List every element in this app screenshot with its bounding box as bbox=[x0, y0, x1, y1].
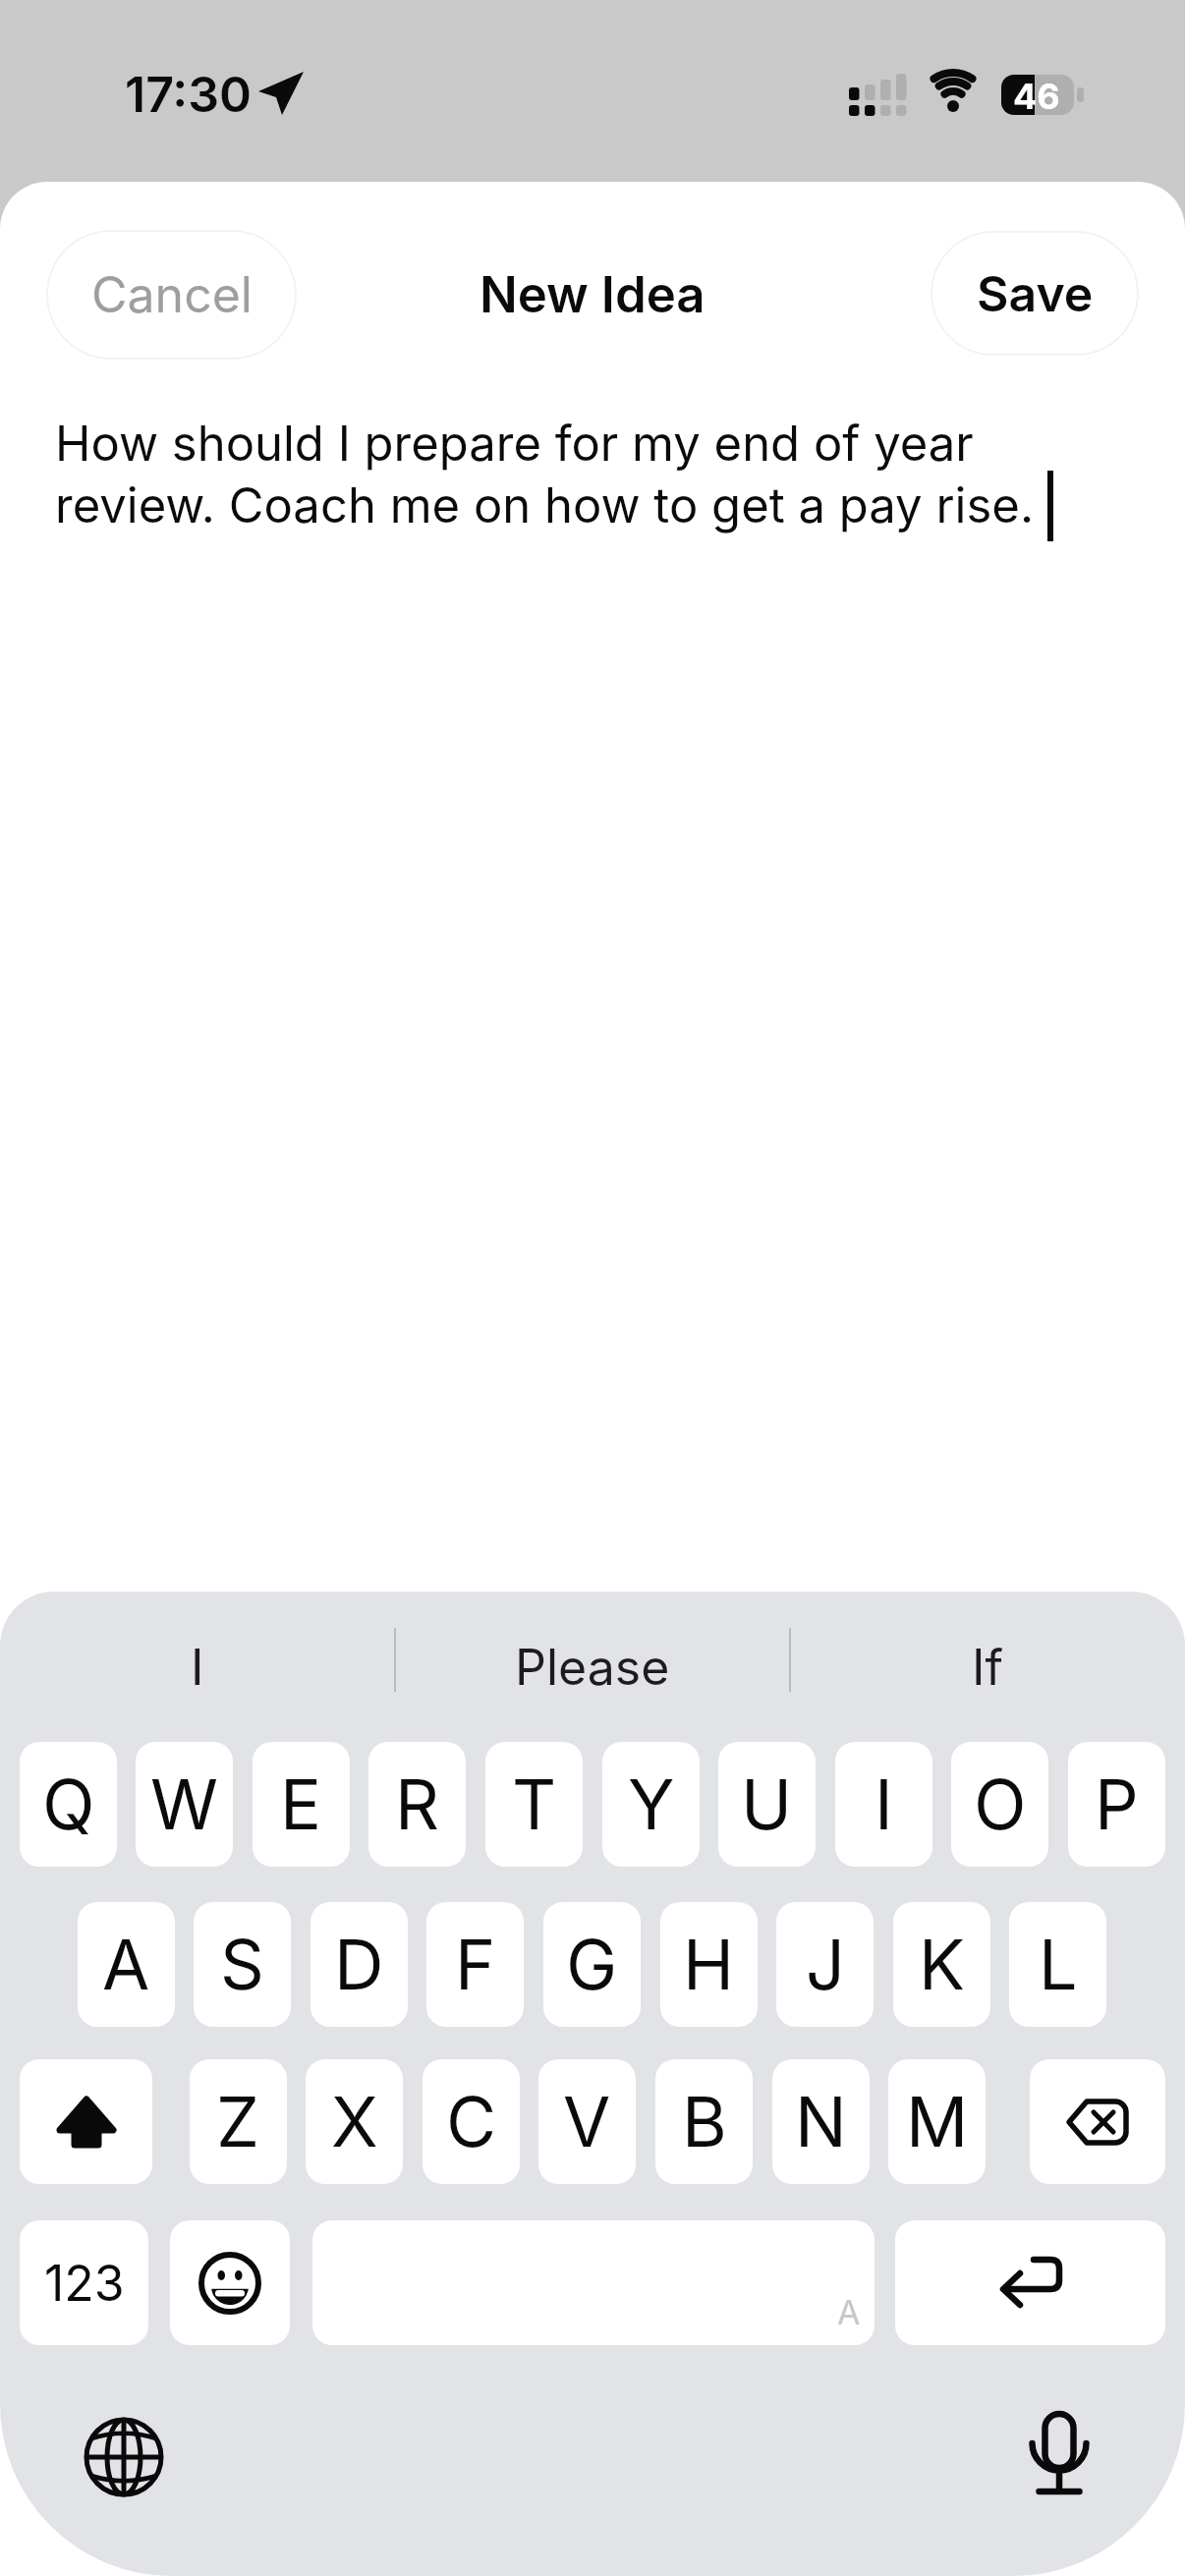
staticText: E bbox=[280, 1763, 322, 1846]
button[interactable]: J bbox=[776, 1902, 874, 2027]
staticText: F bbox=[455, 1923, 496, 2006]
staticText: T bbox=[512, 1763, 557, 1846]
button[interactable]: D bbox=[310, 1902, 408, 2027]
button[interactable] bbox=[20, 2059, 152, 2184]
staticText: J bbox=[806, 1923, 845, 2006]
button[interactable]: I bbox=[835, 1742, 932, 1867]
staticText: S bbox=[220, 1923, 264, 2006]
staticText: I bbox=[875, 1763, 893, 1846]
button[interactable]: H bbox=[660, 1902, 758, 2027]
button[interactable]: Please bbox=[395, 1611, 790, 1722]
staticText: Y bbox=[628, 1763, 675, 1846]
staticText: X bbox=[331, 2080, 378, 2163]
staticText: V bbox=[563, 2080, 611, 2163]
button[interactable]: Save bbox=[931, 231, 1139, 356]
button[interactable]: S bbox=[194, 1902, 291, 2027]
button[interactable]: L bbox=[1009, 1902, 1106, 2027]
button[interactable]: U bbox=[718, 1742, 816, 1867]
button[interactable]: T bbox=[485, 1742, 583, 1867]
button[interactable]: P bbox=[1068, 1742, 1165, 1867]
staticText: Save bbox=[977, 264, 1094, 323]
staticText: R bbox=[395, 1763, 440, 1846]
staticText: W bbox=[150, 1763, 218, 1846]
button[interactable] bbox=[895, 2220, 1165, 2345]
staticText: If bbox=[972, 1638, 1003, 1697]
button[interactable]: E bbox=[253, 1742, 350, 1867]
button[interactable]: I bbox=[0, 1611, 395, 1722]
staticText: 46 bbox=[1013, 75, 1060, 112]
button[interactable]: W bbox=[136, 1742, 233, 1867]
button[interactable]: Cancel bbox=[46, 230, 297, 360]
staticText: D bbox=[334, 1923, 384, 2006]
staticText: Z bbox=[216, 2080, 260, 2163]
button[interactable] bbox=[85, 2418, 163, 2496]
staticText: A bbox=[837, 2292, 861, 2332]
staticText: O bbox=[974, 1763, 1027, 1846]
staticText: C bbox=[446, 2080, 497, 2163]
staticText: A bbox=[102, 1923, 150, 2006]
staticText: H bbox=[683, 1923, 735, 2006]
staticText: New Idea bbox=[480, 264, 705, 325]
staticText: U bbox=[741, 1763, 793, 1846]
button[interactable]: B bbox=[655, 2059, 753, 2184]
button[interactable]: 123 bbox=[20, 2220, 148, 2345]
staticText: L bbox=[1039, 1923, 1078, 2006]
button[interactable]: M bbox=[888, 2059, 986, 2184]
button[interactable]: A bbox=[78, 1902, 175, 2027]
staticText: 17:30 bbox=[125, 65, 253, 124]
button[interactable]: C bbox=[423, 2059, 520, 2184]
staticText: P bbox=[1095, 1763, 1139, 1846]
staticText: Please bbox=[515, 1638, 670, 1697]
staticText: K bbox=[919, 1923, 966, 2006]
staticText: M bbox=[906, 2080, 969, 2163]
staticText: How should I prepare for my end of year … bbox=[55, 415, 1175, 534]
button[interactable]: Z bbox=[190, 2059, 287, 2184]
button[interactable]: Y bbox=[602, 1742, 700, 1867]
staticText: I bbox=[191, 1638, 204, 1697]
staticText: N bbox=[795, 2080, 847, 2163]
staticText: Cancel bbox=[91, 265, 253, 324]
staticText: G bbox=[566, 1923, 618, 2006]
button[interactable]: K bbox=[893, 1902, 990, 2027]
button[interactable] bbox=[1030, 2059, 1165, 2184]
button[interactable]: X bbox=[306, 2059, 403, 2184]
staticText: 123 bbox=[44, 2254, 125, 2313]
button[interactable]: N bbox=[772, 2059, 870, 2184]
staticText: Q bbox=[42, 1763, 95, 1846]
button[interactable]: V bbox=[538, 2059, 636, 2184]
button[interactable] bbox=[1029, 2409, 1090, 2499]
button[interactable]: If bbox=[790, 1611, 1185, 1722]
button[interactable] bbox=[170, 2220, 290, 2345]
button[interactable]: G bbox=[543, 1902, 641, 2027]
button[interactable]: O bbox=[951, 1742, 1048, 1867]
button[interactable]: Q bbox=[20, 1742, 117, 1867]
button[interactable]: A bbox=[312, 2220, 875, 2345]
button[interactable]: F bbox=[426, 1902, 524, 2027]
button[interactable]: R bbox=[368, 1742, 466, 1867]
staticText: B bbox=[682, 2080, 727, 2163]
